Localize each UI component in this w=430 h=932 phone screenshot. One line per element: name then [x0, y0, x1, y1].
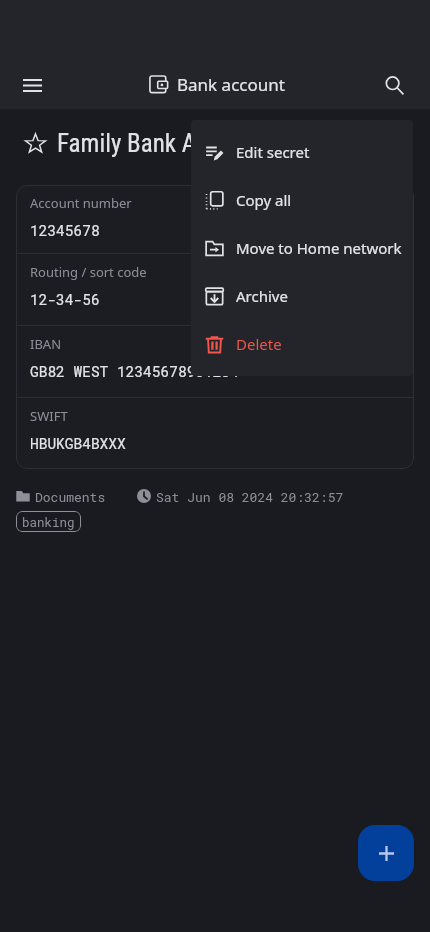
staticText: Edit secret — [236, 142, 310, 162]
staticText: 12-34-56 — [30, 290, 100, 309]
button[interactable]: Edit secret — [191, 128, 413, 176]
staticText: Account number — [30, 194, 132, 212]
staticText: Bank account — [177, 73, 285, 96]
button[interactable]: Add — [358, 825, 414, 881]
staticText: IBAN — [30, 335, 62, 353]
staticText: banking — [22, 514, 75, 530]
staticText: Delete — [236, 334, 282, 354]
staticText: Move to Home network — [236, 238, 402, 258]
staticText: Copy all — [236, 190, 292, 210]
button[interactable]: Archive — [191, 272, 413, 320]
button[interactable]: Favourite — [25, 133, 46, 154]
button[interactable]: Menu — [12, 65, 52, 105]
staticText: Archive — [236, 286, 288, 306]
button[interactable]: Delete — [191, 320, 413, 368]
button[interactable]: Search — [374, 65, 414, 105]
staticText: Family Bank Account — [57, 129, 264, 158]
staticText: SWIFT — [30, 407, 68, 425]
button[interactable]: Account number — [16, 185, 414, 254]
staticText: HBUKGB4BXXX — [30, 434, 126, 453]
button[interactable]: Routing / sort code — [16, 254, 414, 326]
staticText: GB82 WEST 12345678901234 — [30, 362, 239, 381]
button[interactable]: SWIFT — [16, 398, 414, 469]
button[interactable]: Copy all — [191, 176, 413, 224]
button[interactable]: IBAN — [16, 326, 414, 398]
staticText: Documents — [35, 488, 106, 505]
button[interactable]: banking — [16, 511, 81, 532]
staticText: 12345678 — [30, 221, 100, 240]
staticText: Routing / sort code — [30, 263, 147, 281]
button[interactable]: Move to Home network — [191, 224, 413, 272]
staticText: Sat Jun 08 2024 20:32:57 — [156, 488, 344, 505]
